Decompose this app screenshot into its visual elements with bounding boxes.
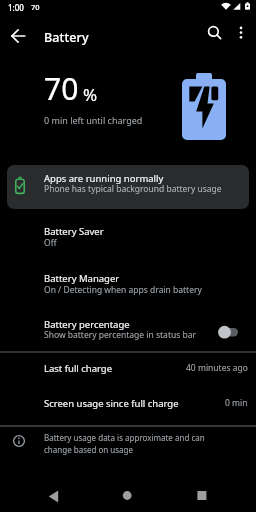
button[interactable]: Battery percentage	[0, 311, 256, 353]
staticText: Phone has typical background battery usa…	[44, 183, 222, 195]
staticText: Off	[44, 237, 57, 249]
button[interactable]	[40, 482, 66, 508]
button[interactable]: Screen usage since full charge	[0, 391, 256, 421]
staticText: Battery percentage	[44, 318, 130, 331]
button[interactable]: Battery Saver	[0, 218, 256, 260]
staticText: Battery Manager	[44, 272, 120, 285]
button[interactable]: Apps are running normally	[7, 165, 249, 209]
button[interactable]: Last full charge	[0, 356, 256, 386]
staticText: 0 min	[225, 397, 248, 409]
button[interactable]	[188, 482, 214, 508]
staticText: Last full charge	[44, 362, 113, 375]
staticText: On / Detecting when apps drain battery	[44, 284, 202, 296]
staticText: 0 min left until charged	[44, 114, 143, 126]
staticText: Battery Saver	[44, 225, 104, 238]
staticText: Screen usage since full charge	[44, 397, 179, 410]
staticText: 1:00	[8, 2, 24, 13]
button[interactable]	[5, 22, 33, 50]
staticText: Battery	[44, 29, 89, 46]
button[interactable]	[227, 18, 255, 46]
button[interactable]	[114, 482, 140, 508]
staticText: Battery usage data is approximate and ca…	[44, 432, 205, 455]
staticText: Apps are running normally	[44, 172, 164, 185]
staticText: 40 minutes ago	[186, 362, 248, 374]
staticText: %	[83, 83, 98, 106]
button[interactable]	[200, 18, 228, 46]
staticText: 70	[31, 2, 40, 12]
staticText: Show battery percentage in status bar	[44, 329, 196, 341]
button[interactable]: Battery Manager	[0, 265, 256, 307]
staticText: 70	[44, 68, 79, 109]
